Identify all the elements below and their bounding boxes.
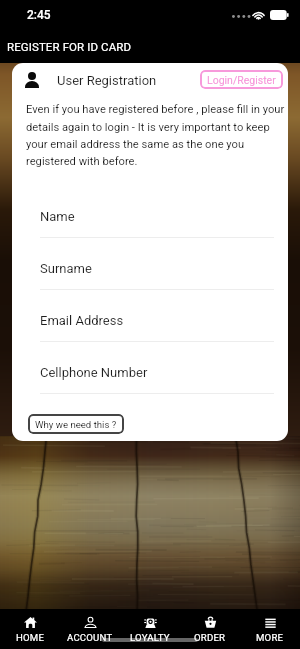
staticText: Even if you have registered before , ple…: [26, 103, 288, 167]
staticText: Cellphone Number: [40, 365, 148, 380]
button[interactable]: Account: [60, 609, 120, 649]
staticText: Why we need this ?: [35, 419, 117, 430]
button[interactable]: More: [240, 609, 300, 649]
staticText: User Registration: [57, 73, 157, 88]
button[interactable]: Order: [180, 609, 240, 649]
staticText: REGISTER FOR ID CARD: [7, 40, 132, 53]
button[interactable]: Surname: [12, 238, 288, 290]
staticText: Email Address: [40, 313, 124, 328]
staticText: 2:45: [27, 8, 51, 22]
staticText: Name: [40, 209, 75, 224]
button[interactable]: Why we need this ?: [28, 414, 124, 434]
staticText: ACCOUNT: [67, 632, 113, 643]
staticText: Login/Register: [207, 74, 276, 86]
button[interactable]: Email Address: [12, 290, 288, 342]
button[interactable]: Name: [12, 186, 288, 238]
button[interactable]: Loyalty: [120, 609, 180, 649]
staticText: HOME: [16, 632, 45, 643]
staticText: LOYALTY: [130, 632, 170, 643]
button[interactable]: Login/Register: [200, 70, 283, 89]
button[interactable]: Home: [0, 609, 60, 649]
staticText: Surname: [40, 261, 92, 276]
staticText: MORE: [256, 632, 284, 643]
button[interactable]: Cellphone Number: [12, 342, 288, 394]
staticText: ORDER: [194, 632, 226, 643]
